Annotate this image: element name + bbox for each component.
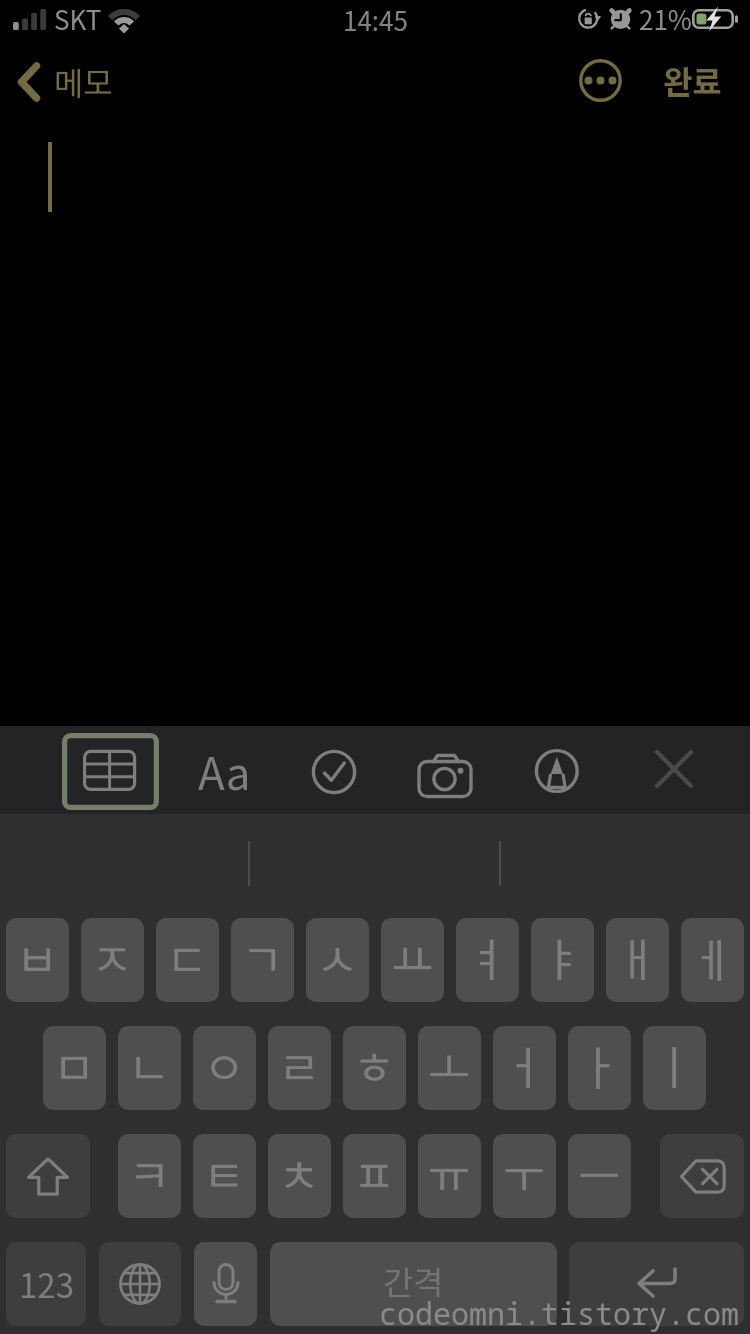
- staticText: ㅡ: [578, 1140, 621, 1207]
- staticText: ㅛ: [391, 924, 434, 991]
- staticText: 21%: [639, 0, 692, 38]
- staticText: ㅎ: [353, 1032, 396, 1099]
- staticText: 14:45: [343, 1, 408, 39]
- button[interactable]: ㅛ: [381, 918, 444, 1002]
- staticText: ㄷ: [166, 924, 209, 991]
- button[interactable]: ㅈ: [81, 918, 144, 1002]
- button[interactable]: ㅅ: [306, 918, 369, 1002]
- button[interactable]: 음성 입력: [194, 1242, 257, 1326]
- staticText: 완료: [663, 57, 722, 103]
- staticText: ㅇ: [203, 1032, 246, 1099]
- button[interactable]: ㅏ: [568, 1026, 631, 1110]
- staticText: Aa: [198, 739, 251, 803]
- staticText: codeomni.tistory.com: [379, 1293, 739, 1334]
- button[interactable]: 더 보기: [568, 48, 632, 112]
- button[interactable]: 숫자 키보드: [6, 1242, 86, 1326]
- staticText: ㄹ: [278, 1032, 321, 1099]
- button[interactable]: 체크리스트: [290, 733, 377, 810]
- button[interactable]: 지우기: [660, 1134, 744, 1218]
- button[interactable]: ㅇ: [193, 1026, 256, 1110]
- button[interactable]: ㅎ: [343, 1026, 406, 1110]
- staticText: 메모: [54, 58, 113, 104]
- staticText: ㅜ: [503, 1140, 546, 1207]
- button[interactable]: ㅕ: [456, 918, 519, 1002]
- button[interactable]: ㅓ: [493, 1026, 556, 1110]
- button[interactable]: ㄱ: [231, 918, 294, 1002]
- button[interactable]: ㅌ: [193, 1134, 256, 1218]
- button[interactable]: ㅔ: [681, 918, 744, 1002]
- staticText: ㅅ: [316, 924, 359, 991]
- staticText: ㄱ: [241, 924, 284, 991]
- button[interactable]: 메모: [0, 45, 131, 124]
- staticText: ㅑ: [541, 924, 584, 991]
- button[interactable]: 줄바꿈: [569, 1242, 744, 1326]
- button[interactable]: ㅂ: [6, 918, 69, 1002]
- staticText: SKT: [54, 0, 102, 38]
- staticText: ㅔ: [691, 924, 734, 991]
- button[interactable]: ㅁ: [43, 1026, 106, 1110]
- button[interactable]: ㄷ: [156, 918, 219, 1002]
- button[interactable]: 완료: [643, 45, 741, 115]
- staticText: ㅕ: [466, 924, 509, 991]
- staticText: ㅣ: [653, 1032, 696, 1099]
- button[interactable]: 마크업: [514, 733, 598, 810]
- staticText: ㅓ: [503, 1032, 546, 1099]
- staticText: 간격: [383, 1257, 444, 1305]
- staticText: ㅂ: [16, 924, 59, 991]
- staticText: ㅊ: [278, 1140, 321, 1207]
- staticText: ㅁ: [53, 1032, 96, 1099]
- staticText: ㅍ: [353, 1140, 396, 1207]
- button[interactable]: ㅐ: [606, 918, 669, 1002]
- button[interactable]: ㅑ: [531, 918, 594, 1002]
- button[interactable]: ㄹ: [268, 1026, 331, 1110]
- button[interactable]: ㅣ: [643, 1026, 706, 1110]
- button[interactable]: ㅍ: [343, 1134, 406, 1218]
- button[interactable]: 카메라: [402, 733, 486, 810]
- button[interactable]: ㅗ: [418, 1026, 481, 1110]
- staticText: ㅗ: [428, 1032, 471, 1099]
- button[interactable]: [0, 0, 750, 726]
- staticText: ㅈ: [91, 924, 134, 991]
- button[interactable]: ㅠ: [418, 1134, 481, 1218]
- button[interactable]: 언어 변경: [99, 1242, 181, 1326]
- staticText: ㅠ: [428, 1140, 471, 1207]
- button[interactable]: 닫기: [630, 733, 718, 810]
- button[interactable]: Aa: [178, 730, 270, 810]
- staticText: ㅏ: [578, 1032, 621, 1099]
- button[interactable]: ㅜ: [493, 1134, 556, 1218]
- staticText: ㄴ: [128, 1032, 171, 1099]
- staticText: ㅌ: [203, 1140, 246, 1207]
- staticText: ㅐ: [616, 924, 659, 991]
- button[interactable]: ㄴ: [118, 1026, 181, 1110]
- button[interactable]: ㅊ: [268, 1134, 331, 1218]
- button[interactable]: 간격: [270, 1242, 557, 1326]
- staticText: ㅋ: [128, 1140, 171, 1207]
- button[interactable]: ㅋ: [118, 1134, 181, 1218]
- staticText: 123: [19, 1260, 74, 1308]
- button[interactable]: Shift: [6, 1134, 90, 1218]
- button[interactable]: ㅡ: [568, 1134, 631, 1218]
- button[interactable]: 표: [62, 733, 159, 810]
